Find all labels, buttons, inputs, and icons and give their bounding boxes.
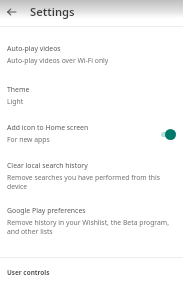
- staticText: Theme: [7, 85, 30, 94]
- staticText: Google Play preferences: [7, 206, 86, 215]
- button[interactable]: Add icon to Home screen toggle: [153, 126, 180, 144]
- button[interactable]: Add icon to Home screen: [0, 123, 183, 144]
- button[interactable]: Clear local search history: [0, 161, 183, 191]
- staticText: Remove history in your Wishlist, the Bet…: [7, 218, 180, 236]
- staticText: Add icon to Home screen: [7, 123, 89, 132]
- staticText: Settings: [30, 4, 75, 19]
- staticText: Light: [7, 97, 24, 106]
- staticText: User controls: [7, 268, 50, 277]
- staticText: For new apps: [7, 135, 50, 144]
- staticText: Auto-play videos over Wi-Fi only: [7, 56, 109, 65]
- button[interactable]: Back: [0, 2, 22, 24]
- staticText: Remove searches you have performed from …: [7, 173, 180, 191]
- staticText: Clear local search history: [7, 161, 88, 170]
- button[interactable]: Auto-play videos: [0, 44, 183, 65]
- button[interactable]: Google Play preferences: [0, 206, 183, 236]
- staticText: Auto-play videos: [7, 44, 61, 53]
- button[interactable]: Theme: [0, 85, 183, 106]
